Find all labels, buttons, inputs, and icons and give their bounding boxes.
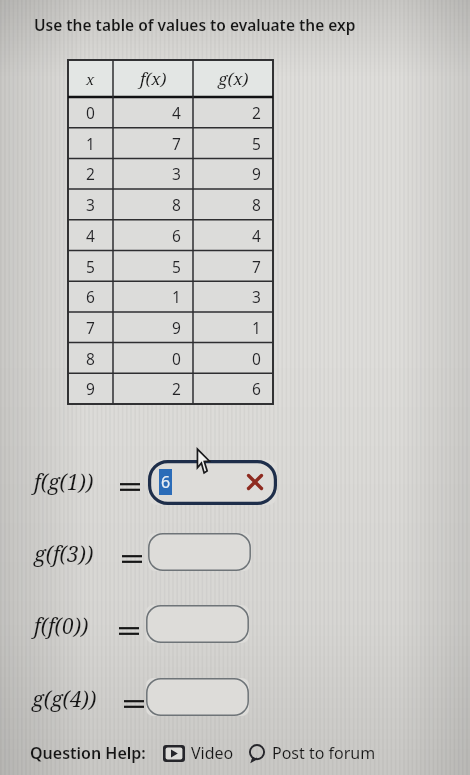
staticText: f(g(1)): [34, 468, 94, 497]
staticText: 9: [172, 317, 181, 338]
staticText: Question Help:: [30, 742, 146, 764]
button[interactable]: [146, 605, 249, 643]
staticText: 2: [252, 102, 261, 123]
other: Video: [163, 745, 185, 762]
button[interactable]: Post to forum: [248, 742, 376, 764]
staticText: 4: [172, 102, 181, 123]
staticText: g(x): [218, 67, 249, 90]
staticText: 8: [252, 194, 261, 215]
staticText: 2: [172, 378, 181, 399]
staticText: 6: [161, 471, 171, 493]
staticText: f(f(0)): [34, 612, 89, 641]
staticText: 5: [86, 256, 95, 277]
staticText: 6: [172, 225, 181, 246]
staticText: 9: [252, 163, 261, 184]
staticText: f(x): [140, 67, 167, 90]
staticText: 0: [86, 102, 95, 123]
button[interactable]: Clear answer: [244, 471, 266, 493]
staticText: 0: [252, 348, 261, 369]
staticText: 7: [252, 256, 261, 277]
staticText: 4: [252, 225, 261, 246]
staticText: 7: [86, 317, 95, 338]
button[interactable]: 6: [148, 460, 277, 505]
staticText: 1: [86, 133, 95, 154]
staticText: Video: [191, 742, 234, 764]
staticText: 6: [252, 378, 261, 399]
staticText: 6: [86, 286, 95, 307]
staticText: 3: [86, 194, 95, 215]
staticText: 9: [86, 378, 95, 399]
staticText: 8: [172, 194, 181, 215]
staticText: 5: [172, 256, 181, 277]
staticText: 4: [86, 225, 95, 246]
staticText: 3: [252, 286, 261, 307]
staticText: g(g(4)): [32, 685, 97, 714]
staticText: Use the table of values to evaluate the …: [34, 14, 356, 35]
staticText: 3: [172, 163, 181, 184]
staticText: 8: [86, 348, 95, 369]
staticText: Post to forum: [272, 742, 376, 764]
other: Post to forum: [248, 744, 266, 762]
button[interactable]: [148, 533, 251, 571]
button[interactable]: [146, 678, 249, 716]
staticText: 0: [172, 348, 181, 369]
staticText: 5: [252, 133, 261, 154]
button[interactable]: Video: [163, 742, 234, 764]
staticText: g(f(3)): [34, 540, 94, 569]
staticText: 1: [172, 286, 181, 307]
staticText: 1: [252, 317, 261, 338]
staticText: 7: [172, 133, 181, 154]
staticText: x: [86, 69, 95, 89]
staticText: 2: [86, 163, 95, 184]
